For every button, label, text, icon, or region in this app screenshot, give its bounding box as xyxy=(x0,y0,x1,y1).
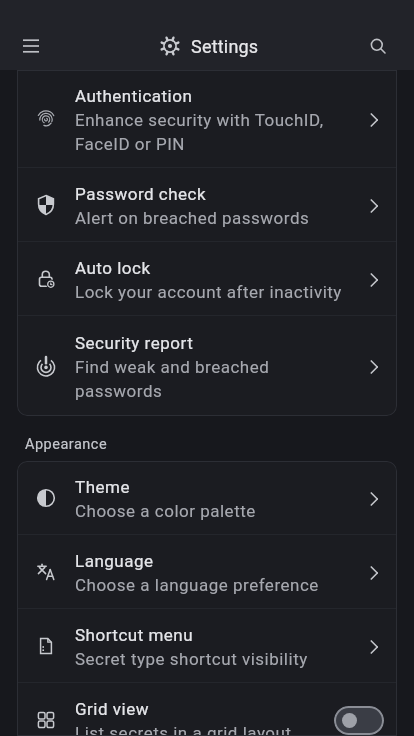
staticText: Auto lock xyxy=(75,258,151,278)
staticText: Shortcut menu xyxy=(75,625,194,645)
button[interactable]: Theme xyxy=(17,461,397,535)
button[interactable]: Grid view xyxy=(17,683,397,736)
staticText: Secret type shortcut visibility xyxy=(75,649,308,669)
staticText: passwords xyxy=(75,381,163,401)
staticText: Security report xyxy=(75,333,194,353)
staticText: Enhance security with TouchID, xyxy=(75,110,324,130)
button[interactable]: Shortcut menu xyxy=(17,609,397,683)
button[interactable]: Security report xyxy=(17,316,397,416)
button[interactable]: Password check xyxy=(17,168,397,242)
staticText: Alert on breached passwords xyxy=(75,208,310,228)
staticText: Choose a color palette xyxy=(75,501,256,521)
staticText: Language xyxy=(75,551,154,571)
button[interactable]: Authentication xyxy=(17,70,397,168)
button[interactable] xyxy=(334,706,384,735)
staticText: List secrets in a grid layout xyxy=(75,723,292,736)
button[interactable]: Auto lock xyxy=(17,242,397,316)
button[interactable]: Settings xyxy=(159,22,259,70)
staticText: Password check xyxy=(75,184,207,204)
staticText: Settings xyxy=(191,36,259,57)
button[interactable] xyxy=(7,22,55,70)
staticText: Find weak and breached xyxy=(75,357,270,377)
staticText: Appearance xyxy=(25,436,108,453)
button[interactable] xyxy=(354,22,402,70)
staticText: FaceID or PIN xyxy=(75,134,185,154)
button[interactable]: Language xyxy=(17,535,397,609)
staticText: Lock your account after inactivity xyxy=(75,282,342,302)
staticText: Authentication xyxy=(75,86,193,106)
staticText: Grid view xyxy=(75,699,149,719)
staticText: Choose a language preference xyxy=(75,575,319,595)
staticText: Theme xyxy=(75,477,130,497)
